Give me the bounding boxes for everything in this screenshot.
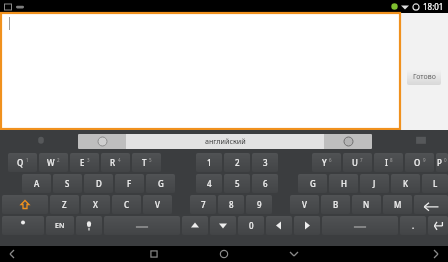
staticText: B	[333, 199, 339, 210]
staticText: V	[155, 199, 160, 210]
staticText: C	[124, 199, 130, 210]
button[interactable]: Forward	[430, 248, 442, 260]
button[interactable]: W	[39, 153, 68, 172]
button[interactable]: 1	[196, 153, 222, 172]
button[interactable]: Up	[182, 216, 208, 235]
button[interactable]: Home	[217, 247, 231, 261]
staticText: 0	[444, 157, 447, 163]
button[interactable]: Keyboard layout	[414, 134, 428, 148]
button[interactable]: O	[405, 153, 434, 172]
staticText: 8	[390, 157, 393, 163]
button[interactable]: E	[70, 153, 99, 172]
staticText: 8	[229, 199, 234, 210]
button[interactable]: U	[343, 153, 372, 172]
button[interactable]: Enter	[428, 216, 448, 235]
button[interactable]: Q	[8, 153, 37, 172]
button[interactable]: 7	[190, 195, 216, 214]
button[interactable]: V	[290, 195, 319, 214]
button[interactable]: B	[321, 195, 350, 214]
button[interactable]: Hide keyboard	[287, 247, 301, 261]
staticText: K	[403, 178, 409, 189]
button[interactable]: 6	[252, 174, 278, 193]
button[interactable]: Voice off	[34, 134, 48, 148]
button[interactable]: F	[115, 174, 144, 193]
button[interactable]: G	[298, 174, 327, 193]
button[interactable]: Готово	[407, 69, 441, 85]
staticText: I	[385, 157, 388, 168]
staticText: G	[310, 178, 316, 189]
staticText: 18:01	[423, 1, 444, 12]
button[interactable]: Down	[210, 216, 236, 235]
button[interactable]: N	[352, 195, 381, 214]
staticText: G	[158, 178, 164, 189]
button[interactable]: X	[81, 195, 110, 214]
button[interactable]: G	[146, 174, 175, 193]
button[interactable]: Right	[294, 216, 320, 235]
button[interactable]: R	[101, 153, 130, 172]
button[interactable]: H	[329, 174, 358, 193]
button[interactable]: Symbols	[2, 216, 44, 235]
staticText: Z	[62, 199, 67, 210]
staticText: 7	[360, 157, 363, 163]
button[interactable]: Y	[312, 153, 341, 172]
button[interactable]: M	[383, 195, 412, 214]
button[interactable]: P	[436, 153, 448, 172]
staticText: 9	[257, 199, 262, 210]
staticText: 2	[235, 157, 240, 168]
staticText: Y	[322, 157, 327, 168]
button[interactable]: V	[143, 195, 172, 214]
staticText: 3	[263, 157, 268, 168]
staticText: 6	[263, 178, 268, 189]
button[interactable]: Space	[104, 216, 180, 235]
staticText: 7	[201, 199, 206, 210]
button[interactable]: S	[53, 174, 82, 193]
button[interactable]: D	[84, 174, 113, 193]
button[interactable]: 0	[238, 216, 264, 235]
button[interactable]: Z	[50, 195, 79, 214]
staticText: R	[110, 157, 116, 168]
button[interactable]: Left	[266, 216, 292, 235]
staticText: E	[80, 157, 85, 168]
button[interactable]: Voice input	[76, 216, 102, 235]
button[interactable]: L	[422, 174, 448, 193]
staticText: M	[394, 199, 402, 210]
staticText: V	[302, 199, 307, 210]
button[interactable]: 5	[224, 174, 250, 193]
button[interactable]: .	[400, 216, 426, 235]
staticText: Готово	[413, 72, 436, 82]
button[interactable]: Recents	[147, 247, 161, 261]
staticText: 4	[207, 178, 212, 189]
button[interactable]: J	[360, 174, 389, 193]
staticText: O	[414, 157, 421, 168]
staticText: 0	[249, 220, 254, 231]
button[interactable]: I	[374, 153, 403, 172]
button[interactable]: английский	[78, 134, 372, 149]
staticText: 2	[57, 157, 60, 163]
staticText: Q	[17, 157, 24, 168]
staticText: X	[93, 199, 98, 210]
button[interactable]: Delete	[414, 195, 448, 214]
staticText: U	[352, 157, 358, 168]
staticText: P	[437, 157, 442, 168]
staticText: 5	[149, 157, 152, 163]
button[interactable]: Shift	[2, 195, 48, 214]
button[interactable]: 4	[196, 174, 222, 193]
staticText: 9	[423, 157, 426, 163]
button[interactable]: Space	[322, 216, 398, 235]
staticText: EN	[55, 221, 65, 231]
button[interactable]: K	[391, 174, 420, 193]
button[interactable]: 3	[252, 153, 278, 172]
button[interactable]: C	[112, 195, 141, 214]
button[interactable]: Back	[6, 248, 18, 260]
button[interactable]: T	[132, 153, 161, 172]
button[interactable]	[1, 13, 400, 129]
staticText: F	[127, 178, 132, 189]
staticText: J	[373, 178, 376, 189]
button[interactable]: EN	[46, 216, 74, 235]
staticText: 1	[207, 157, 212, 168]
button[interactable]: 9	[246, 195, 272, 214]
button[interactable]: 2	[224, 153, 250, 172]
staticText: N	[363, 199, 370, 210]
button[interactable]: A	[22, 174, 51, 193]
button[interactable]: 8	[218, 195, 244, 214]
